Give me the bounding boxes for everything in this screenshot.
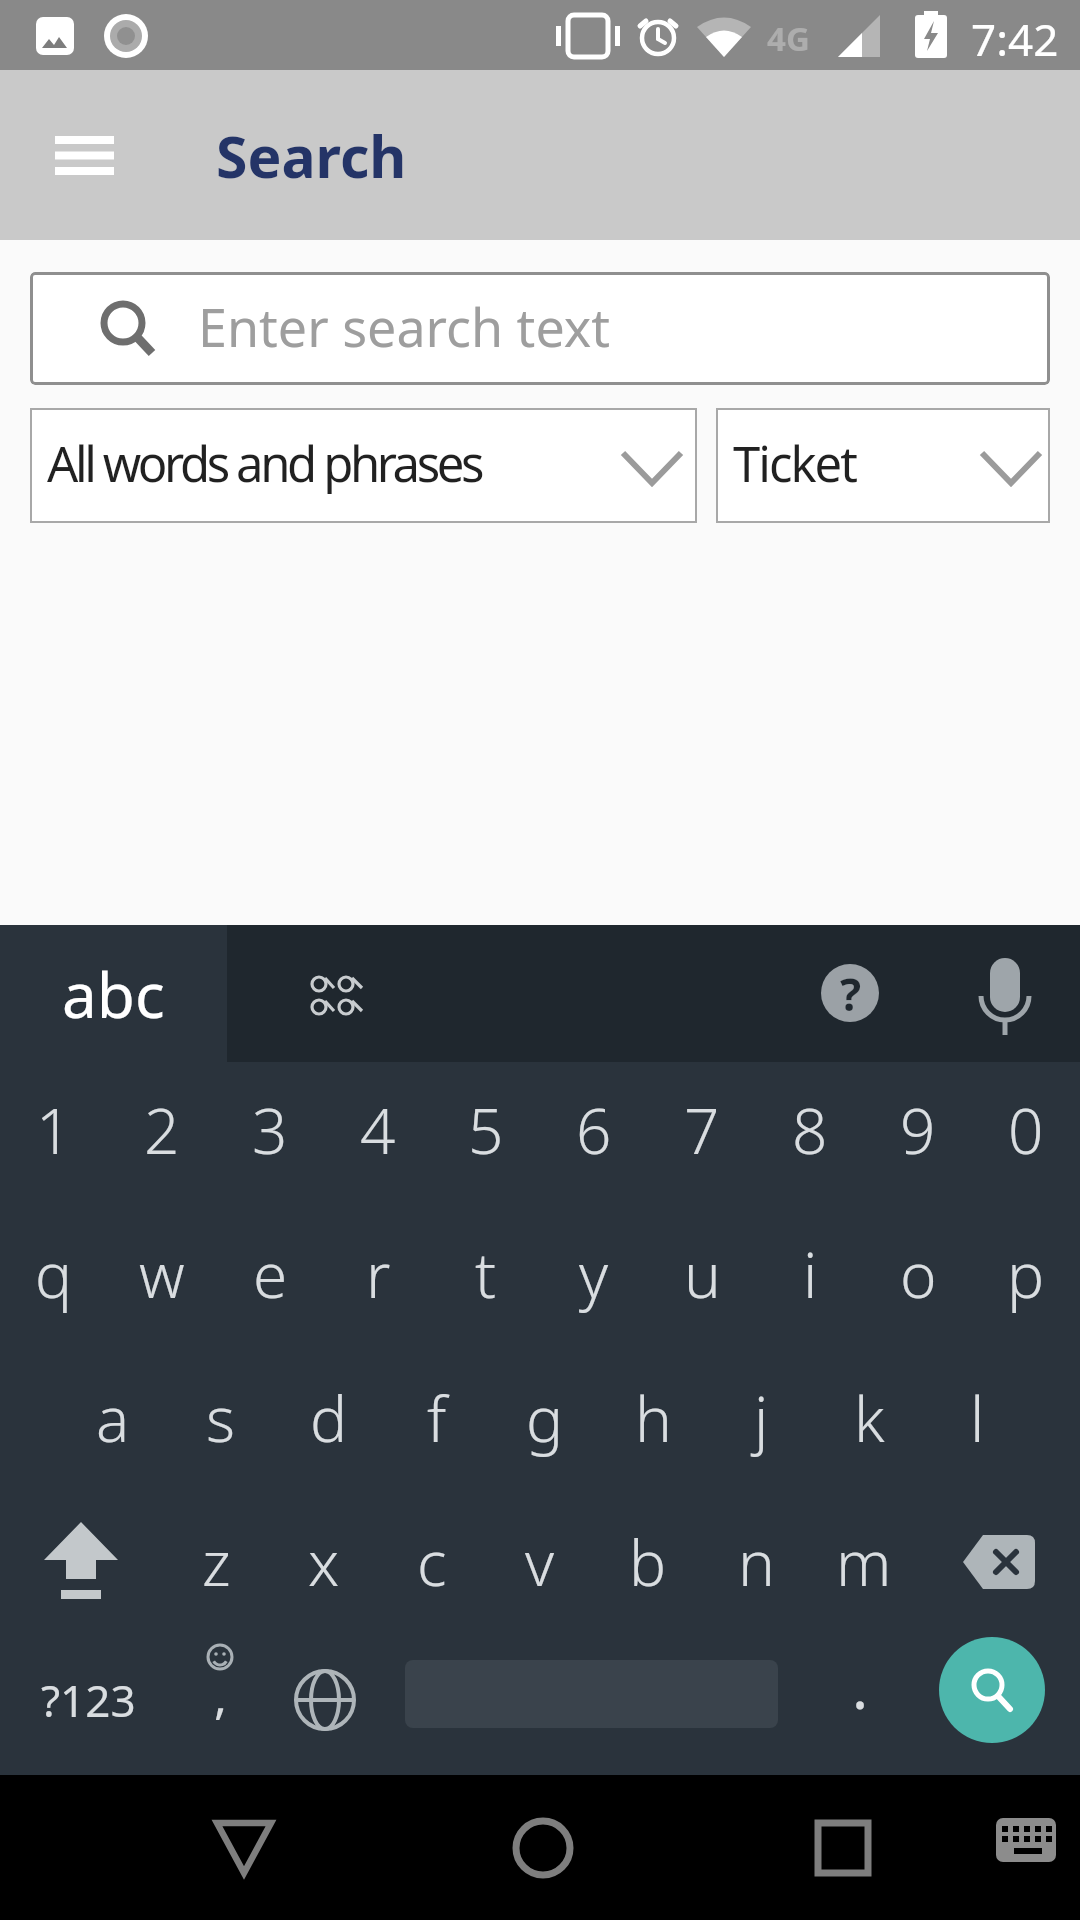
button[interactable]: ?123 <box>0 1625 176 1775</box>
button[interactable] <box>918 1490 1080 1634</box>
staticText: y <box>579 1232 609 1316</box>
staticText: s <box>206 1376 236 1460</box>
button[interactable] <box>265 1625 385 1775</box>
button[interactable]: 0 <box>972 1058 1080 1202</box>
button[interactable]: c <box>378 1490 486 1634</box>
button[interactable]: 1 <box>0 1058 108 1202</box>
staticText: 3 <box>252 1088 288 1172</box>
staticText: j <box>754 1376 769 1460</box>
staticText: q <box>35 1232 73 1316</box>
staticText: u <box>684 1232 721 1316</box>
staticText: o <box>900 1232 937 1316</box>
button[interactable]: j <box>707 1346 815 1490</box>
button[interactable]: abc <box>0 925 227 1062</box>
button[interactable]: d <box>275 1346 383 1490</box>
staticText: 4 <box>360 1088 396 1172</box>
button[interactable] <box>194 1795 294 1900</box>
button[interactable]: y <box>540 1202 648 1346</box>
staticText: m <box>836 1520 892 1604</box>
button[interactable]: w <box>108 1202 216 1346</box>
button[interactable]: Ticket <box>716 408 1050 523</box>
button[interactable]: h <box>599 1346 707 1490</box>
button[interactable]: ? <box>821 964 879 1022</box>
button[interactable]: g <box>491 1346 599 1490</box>
button[interactable]: t <box>432 1202 540 1346</box>
button[interactable]: 2 <box>108 1058 216 1202</box>
staticText: p <box>1007 1232 1045 1316</box>
button[interactable]: i <box>756 1202 864 1346</box>
staticText: abc <box>62 952 165 1036</box>
button[interactable]: k <box>815 1346 923 1490</box>
staticText: 7:42 <box>971 9 1059 69</box>
button[interactable]: All words and phrases <box>30 408 697 523</box>
button[interactable]: x <box>270 1490 378 1634</box>
button[interactable]: o <box>864 1202 972 1346</box>
staticText: 1 <box>36 1088 72 1172</box>
button[interactable]: 7 <box>648 1058 756 1202</box>
button[interactable] <box>493 1795 593 1900</box>
staticText: x <box>308 1520 340 1604</box>
button[interactable] <box>0 1490 162 1634</box>
button[interactable]: m <box>810 1490 918 1634</box>
staticText: b <box>629 1520 667 1604</box>
button[interactable]: , <box>176 1625 265 1775</box>
staticText: r <box>366 1232 391 1316</box>
button[interactable]: 9 <box>864 1058 972 1202</box>
staticText: Ticket <box>733 430 856 497</box>
button[interactable]: l <box>923 1346 1031 1490</box>
button[interactable]: Enter search text <box>30 272 1050 385</box>
button[interactable]: z <box>162 1490 270 1634</box>
button[interactable]: u <box>648 1202 756 1346</box>
staticText: f <box>427 1376 447 1460</box>
button[interactable] <box>40 121 130 191</box>
button[interactable]: r <box>324 1202 432 1346</box>
button[interactable]: . <box>810 1625 910 1775</box>
staticText: a <box>96 1376 130 1460</box>
button[interactable]: b <box>594 1490 702 1634</box>
button[interactable]: 8 <box>756 1058 864 1202</box>
staticText: ? <box>840 964 861 1022</box>
staticText: 0 <box>1008 1088 1044 1172</box>
button[interactable]: 6 <box>540 1058 648 1202</box>
button[interactable]: e <box>216 1202 324 1346</box>
button[interactable] <box>965 950 1045 1050</box>
button[interactable]: n <box>702 1490 810 1634</box>
button[interactable]: 3 <box>216 1058 324 1202</box>
staticText: All words and phrases <box>47 430 482 497</box>
staticText: 8 <box>792 1088 828 1172</box>
staticText: c <box>417 1520 447 1604</box>
staticText: l <box>970 1376 985 1460</box>
staticText: 9 <box>900 1088 936 1172</box>
button[interactable]: v <box>486 1490 594 1634</box>
staticText: ?123 <box>41 1670 136 1730</box>
staticText: v <box>525 1520 555 1604</box>
staticText: 4G <box>767 16 810 61</box>
staticText: e <box>253 1232 288 1316</box>
staticText: Enter search text <box>198 291 610 362</box>
button[interactable]: a <box>59 1346 167 1490</box>
staticText: n <box>738 1520 775 1604</box>
button[interactable] <box>939 1637 1045 1743</box>
staticText: k <box>854 1376 885 1460</box>
staticText: z <box>202 1520 231 1604</box>
staticText: g <box>526 1376 564 1460</box>
button[interactable] <box>793 1795 893 1900</box>
staticText: 6 <box>576 1088 612 1172</box>
staticText: 5 <box>468 1088 504 1172</box>
button[interactable] <box>976 1803 1076 1893</box>
button[interactable]: s <box>167 1346 275 1490</box>
staticText: , <box>214 1663 227 1728</box>
button[interactable]: p <box>972 1202 1080 1346</box>
staticText: 2 <box>144 1088 180 1172</box>
staticText: t <box>475 1232 497 1316</box>
button[interactable]: 5 <box>432 1058 540 1202</box>
staticText: i <box>803 1232 818 1316</box>
staticText: h <box>635 1376 672 1460</box>
button[interactable]: f <box>383 1346 491 1490</box>
button[interactable]: q <box>0 1202 108 1346</box>
staticText: Search <box>216 117 407 195</box>
staticText: 7 <box>684 1088 720 1172</box>
staticText: d <box>310 1376 348 1460</box>
button[interactable]: 4 <box>324 1058 432 1202</box>
